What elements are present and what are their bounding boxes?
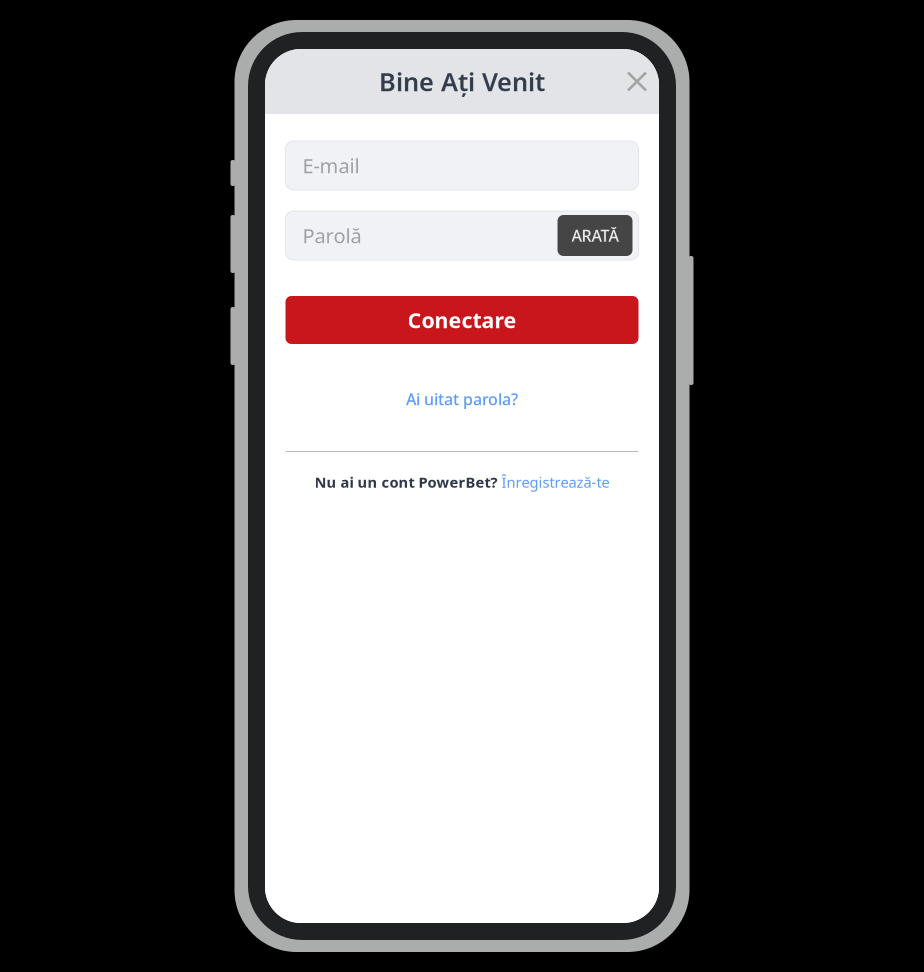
staticText: Bine Ați Venit — [379, 65, 545, 98]
staticText: Conectare — [407, 306, 516, 334]
staticText: E-mail — [302, 152, 359, 179]
button[interactable]: ARATĂ — [557, 215, 632, 256]
staticText: Nu ai un cont PowerBet? — [314, 472, 497, 492]
button[interactable]: Close — [617, 61, 657, 101]
button[interactable]: Ai uitat parola? — [285, 389, 638, 409]
staticText: ARATĂ — [571, 225, 618, 246]
staticText: Înregistrează-te — [497, 472, 609, 492]
staticText: Parolă — [302, 222, 361, 249]
button[interactable]: Înregistrează-te — [497, 472, 609, 492]
button[interactable]: Conectare — [285, 296, 638, 344]
button[interactable]: Parolă — [285, 211, 557, 260]
staticText: Ai uitat parola? — [406, 388, 518, 410]
button[interactable]: E-mail — [285, 141, 638, 190]
